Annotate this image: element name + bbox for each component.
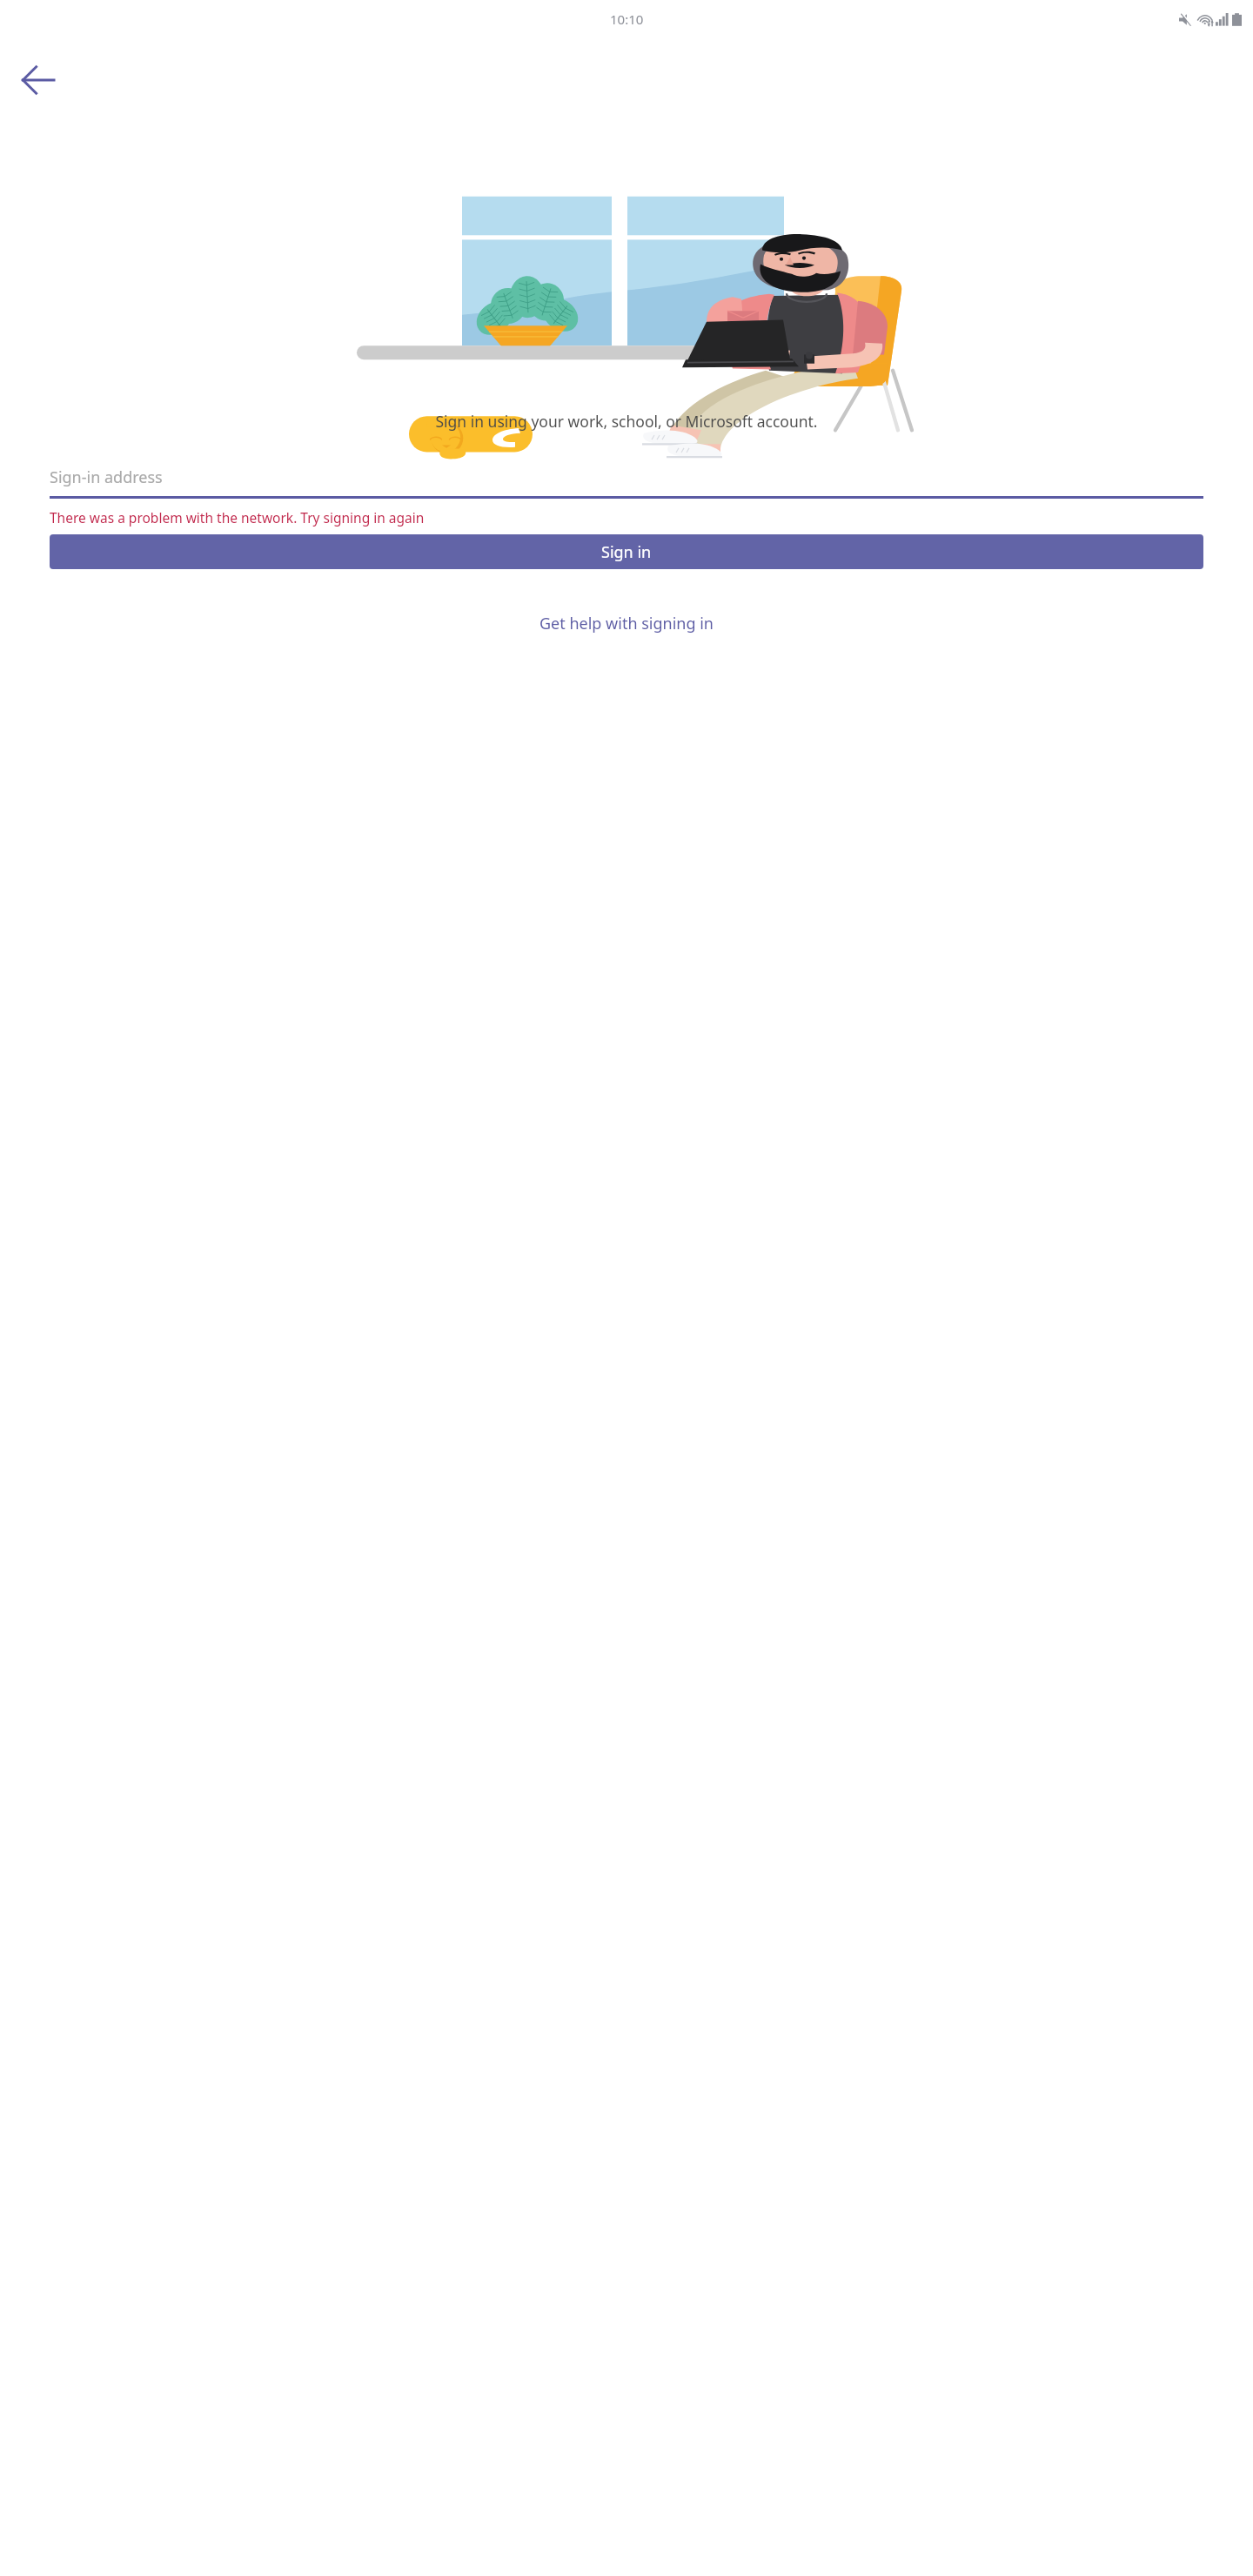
staticText: Sign in [601, 541, 652, 563]
button[interactable]: Get help with signing in [526, 606, 727, 641]
button[interactable]: Back [7, 49, 70, 111]
staticText: Get help with signing in [539, 613, 714, 634]
button[interactable]: Sign in [50, 534, 1203, 569]
staticText: Sign-in address [50, 466, 163, 488]
staticText: There was a problem with the network. Tr… [50, 508, 425, 527]
staticText: 10:10 [610, 10, 644, 28]
button[interactable]: Sign-in address [50, 458, 1203, 499]
staticText: Sign in using your work, school, or Micr… [52, 411, 1201, 432]
